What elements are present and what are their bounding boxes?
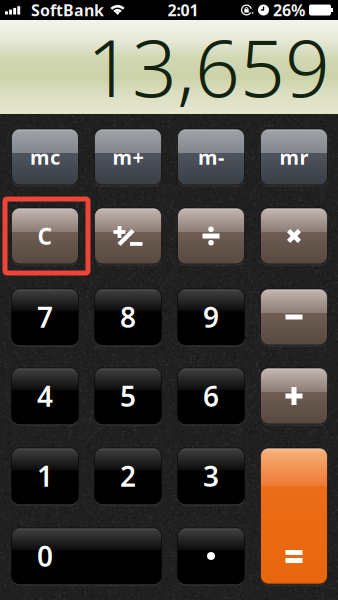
button[interactable]: mc <box>11 129 78 185</box>
staticText: 6 <box>203 377 219 415</box>
button[interactable] <box>260 289 327 345</box>
staticText: m- <box>198 144 224 170</box>
staticText: 3 <box>203 457 219 495</box>
button[interactable]: C <box>11 208 78 264</box>
button[interactable] <box>94 208 161 264</box>
staticText: 9 <box>203 298 219 336</box>
button[interactable]: 2 <box>94 448 161 504</box>
staticText: 7 <box>37 298 53 336</box>
button[interactable]: mr <box>260 129 327 185</box>
button[interactable]: 5 <box>94 368 161 424</box>
button[interactable]: 3 <box>177 448 244 504</box>
staticText: 1 <box>37 457 53 495</box>
button[interactable] <box>177 528 244 584</box>
button[interactable]: 7 <box>11 289 78 345</box>
staticText: SoftBank <box>31 0 104 21</box>
staticText: 2:01 <box>167 0 198 21</box>
button[interactable]: 8 <box>94 289 161 345</box>
button[interactable]: m+ <box>94 129 161 185</box>
staticText: mc <box>30 144 60 170</box>
staticText: 8 <box>120 298 136 336</box>
button[interactable]: m- <box>177 129 244 185</box>
button[interactable] <box>177 208 244 264</box>
button[interactable]: 6 <box>177 368 244 424</box>
staticText: 2 <box>120 457 136 495</box>
staticText: 0 <box>37 537 53 575</box>
button[interactable]: Equals <box>260 448 327 584</box>
staticText: m+ <box>112 144 143 170</box>
button[interactable] <box>260 208 327 264</box>
staticText: 26% <box>273 0 305 21</box>
staticText: mr <box>279 144 308 170</box>
button[interactable]: 4 <box>11 368 78 424</box>
staticText: 13,659 <box>87 14 330 119</box>
button[interactable] <box>260 368 327 424</box>
staticText: 4 <box>37 377 53 415</box>
staticText: C <box>37 221 52 251</box>
staticText: 5 <box>120 377 136 415</box>
button[interactable]: 9 <box>177 289 244 345</box>
button[interactable]: 0 <box>11 528 161 584</box>
button[interactable]: 1 <box>11 448 78 504</box>
